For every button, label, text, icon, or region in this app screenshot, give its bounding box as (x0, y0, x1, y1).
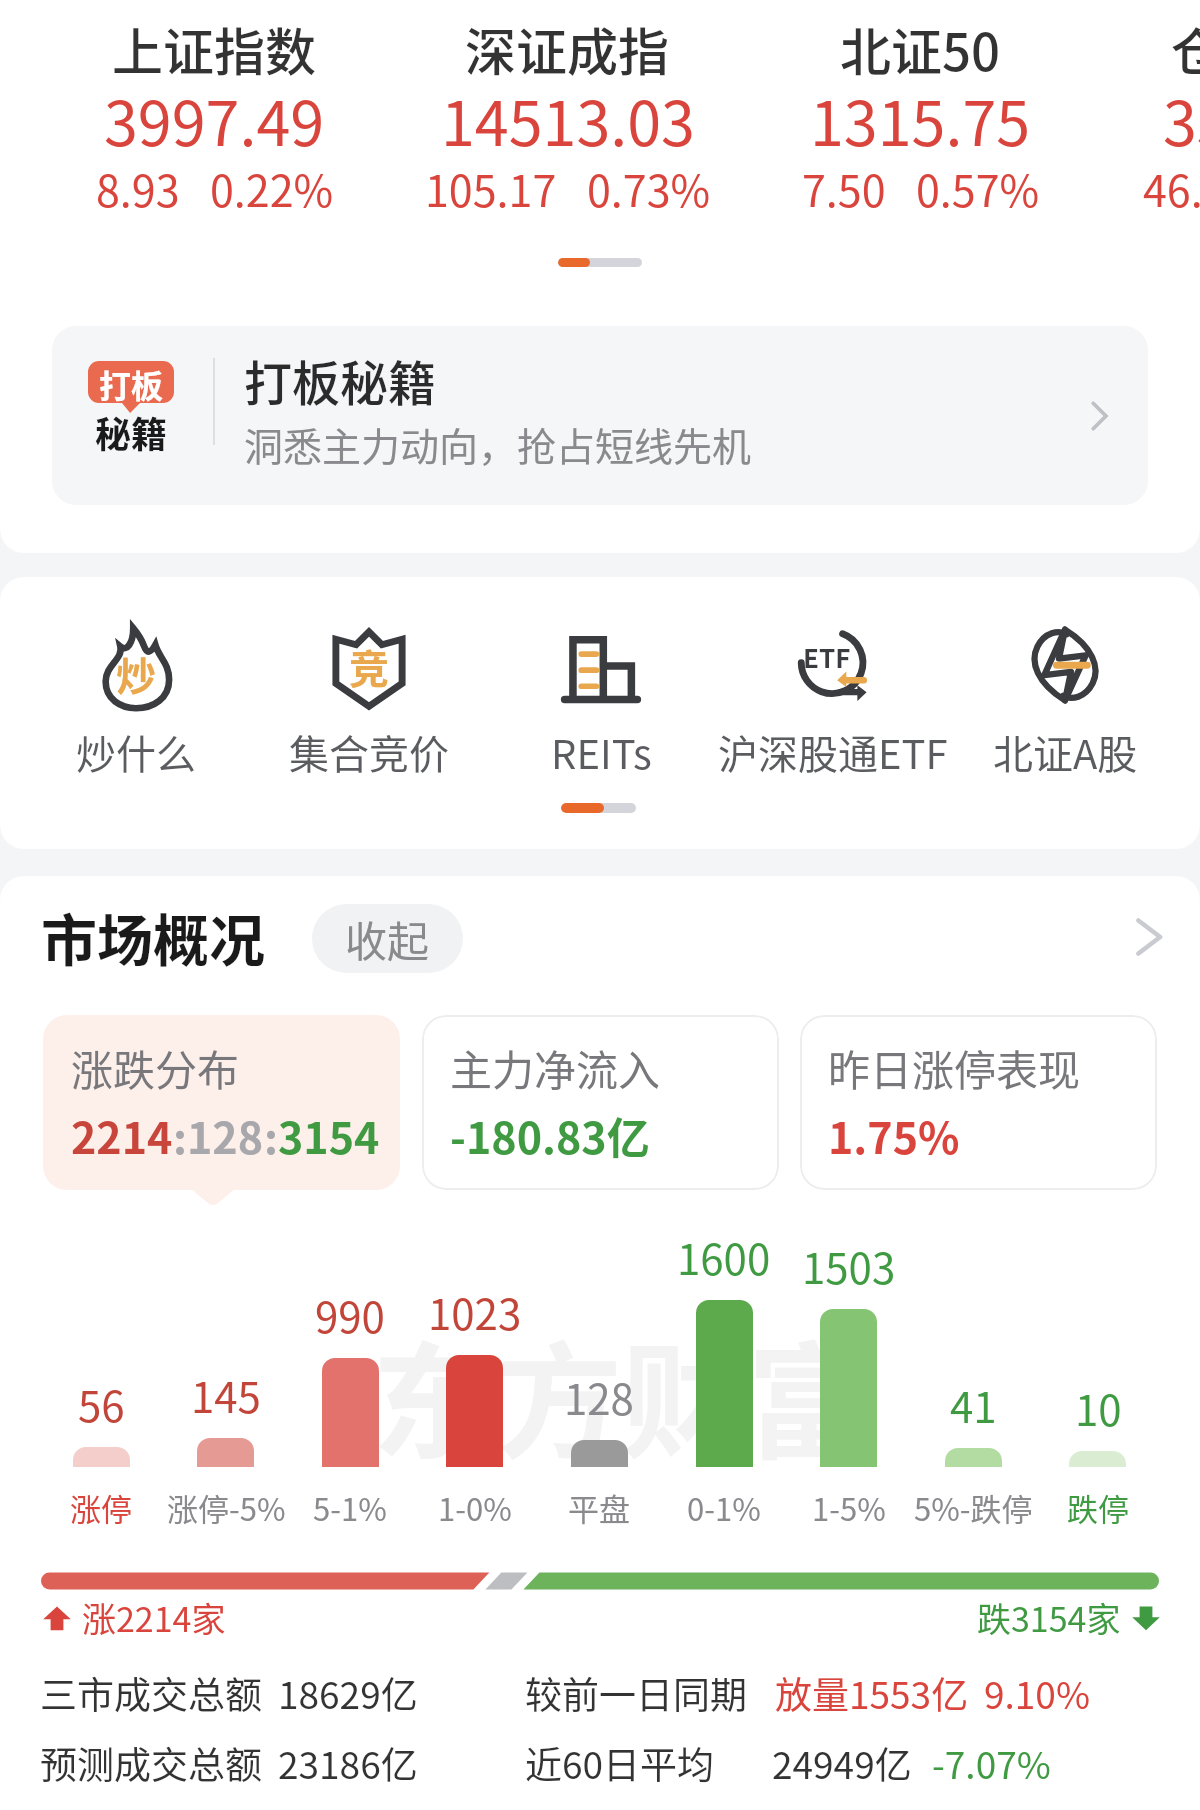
staticText: 0.57% (916, 157, 1040, 219)
staticText: 41 (950, 1374, 997, 1435)
staticText: 0.22% (210, 157, 334, 219)
staticText: 主力净流入 (450, 1037, 661, 1098)
staticText: 仓位参考 (1171, 12, 1200, 86)
staticText: 涨停 (70, 1485, 132, 1530)
staticText: 990 (315, 1284, 385, 1345)
staticText: 炒什么 (76, 723, 196, 781)
button[interactable]: 竞 (252, 577, 485, 849)
staticText: 涨停-5% (167, 1485, 286, 1530)
staticText: 1315.75 (810, 75, 1031, 163)
button[interactable]: 北证50 (744, 0, 1097, 220)
staticText: -180.83亿 (450, 1104, 650, 1166)
staticText: 沪深股通ETF (718, 723, 948, 781)
staticText: 炒 (116, 645, 156, 703)
staticText: 1-0% (438, 1485, 512, 1530)
staticText: 洞悉主力动向，抢占短线先机 (244, 416, 752, 472)
button[interactable] (537, 1330, 661, 1630)
button[interactable]: 昨日涨停表现 (800, 1015, 1157, 1190)
staticText: 跌3154家 (977, 1593, 1121, 1642)
staticText: 46.22 (1143, 157, 1200, 219)
button[interactable] (662, 1330, 786, 1630)
staticText: 5-1% (313, 1485, 387, 1530)
button[interactable] (39, 1330, 163, 1630)
staticText: 128 (564, 1366, 634, 1427)
staticText: 近60日平均 (525, 1736, 715, 1790)
staticText: 收起 (345, 908, 430, 969)
staticText: 1-5% (812, 1485, 886, 1530)
button[interactable]: REITs (485, 577, 717, 849)
staticText: 较前一日同期 (525, 1666, 747, 1720)
staticText: 秘籍 (95, 406, 168, 458)
staticText: 128 (187, 1104, 264, 1166)
staticText: -7.07% (932, 1736, 1051, 1790)
button[interactable]: ETF (717, 577, 949, 849)
staticText: 3997.49 (104, 75, 325, 163)
staticText: 14513.03 (441, 75, 695, 163)
staticText: : (264, 1104, 278, 1166)
staticText: : (173, 1104, 187, 1166)
staticText: 56 (78, 1373, 125, 1434)
button[interactable] (413, 1330, 537, 1630)
button[interactable] (1036, 1330, 1160, 1630)
staticText: 23186亿 (278, 1736, 418, 1790)
button[interactable] (288, 1330, 412, 1630)
staticText: 平盘 (568, 1485, 630, 1530)
button[interactable]: 上证指数 (38, 0, 391, 220)
staticText: 市场概况 (41, 896, 265, 977)
staticText: 3154 (278, 1104, 380, 1166)
staticText: 涨跌分布 (71, 1037, 240, 1098)
staticText: 深证成指 (465, 12, 670, 86)
button[interactable] (164, 1330, 288, 1630)
staticText: 105.17 (425, 157, 557, 219)
staticText: 24949亿 (772, 1736, 912, 1790)
button[interactable]: 市场概况 更多 (1110, 904, 1176, 970)
button[interactable]: 收起 (312, 904, 463, 973)
staticText: 1.75% (828, 1104, 960, 1166)
staticText: 打板 (99, 361, 164, 403)
staticText: 涨2214家 (82, 1593, 226, 1642)
staticText: 打板秘籍 (244, 345, 437, 415)
button[interactable]: 北证A股 (949, 577, 1181, 849)
staticText: 8.93 (96, 157, 180, 219)
staticText: 18629亿 (278, 1666, 418, 1720)
staticText: 7.50 (802, 157, 886, 219)
staticText: 跌停 (1067, 1485, 1129, 1530)
staticText: REITs (551, 723, 652, 781)
button[interactable] (911, 1330, 1035, 1630)
staticText: 2214 (71, 1104, 173, 1166)
staticText: 9.10% (984, 1666, 1090, 1720)
staticText: 北证50 (840, 12, 1001, 86)
staticText: 上证指数 (112, 12, 317, 86)
staticText: 昨日涨停表现 (828, 1037, 1081, 1098)
staticText: 145 (191, 1364, 261, 1425)
staticText: 1023 (428, 1281, 522, 1342)
button[interactable]: 打板秘籍 详情 (1070, 387, 1128, 445)
staticText: 放量1553亿 (775, 1666, 969, 1720)
staticText: 1600 (677, 1226, 771, 1287)
staticText: 预测成交总额 (40, 1736, 262, 1790)
button[interactable]: 炒 (19, 577, 252, 849)
staticText: 1503 (802, 1235, 896, 1296)
button[interactable]: 涨跌分布 (43, 1015, 400, 1190)
button[interactable]: 打板 (52, 326, 1148, 505)
staticText: 3597.21 (1163, 75, 1200, 163)
staticText: 0.73% (587, 157, 711, 219)
staticText: 竞 (349, 638, 389, 696)
staticText: 集合竞价 (289, 723, 449, 781)
button[interactable]: 仓位参考 (1097, 0, 1200, 220)
staticText: ETF (803, 638, 851, 676)
staticText: 三市成交总额 (40, 1666, 262, 1720)
staticText: 10 (1075, 1377, 1122, 1438)
staticText: 5%-跌停 (914, 1485, 1033, 1530)
staticText: 0-1% (687, 1485, 761, 1530)
button[interactable]: 主力净流入 (422, 1015, 779, 1190)
staticText: 北证A股 (993, 723, 1138, 781)
button[interactable] (787, 1330, 911, 1630)
button[interactable]: 深证成指 (391, 0, 744, 220)
staticText: 东方财富 (372, 1303, 872, 1484)
